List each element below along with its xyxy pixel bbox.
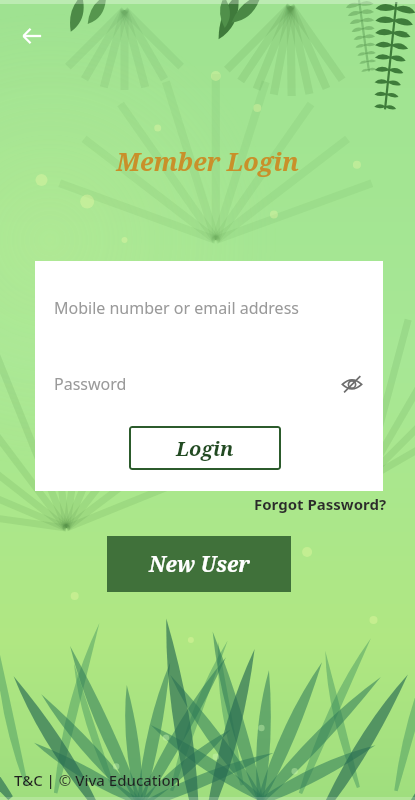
button[interactable]: Back [10, 14, 54, 58]
button[interactable]: Show password [337, 369, 367, 399]
button[interactable]: Password [35, 367, 383, 401]
staticText: Member Login [116, 144, 299, 178]
button[interactable]: New User [107, 536, 291, 592]
staticText: Password [54, 373, 127, 395]
button[interactable]: Login [129, 426, 281, 470]
staticText: Forgot Password? [254, 494, 387, 514]
staticText: Login [176, 435, 234, 462]
staticText: Mobile number or email address [54, 297, 299, 319]
button[interactable]: Mobile number or email address [35, 291, 383, 325]
button[interactable]: T&C | © Viva Education [14, 770, 181, 790]
staticText: T&C | © Viva Education [14, 770, 181, 790]
button[interactable]: Forgot Password? [252, 492, 389, 516]
staticText: New User [149, 550, 250, 579]
